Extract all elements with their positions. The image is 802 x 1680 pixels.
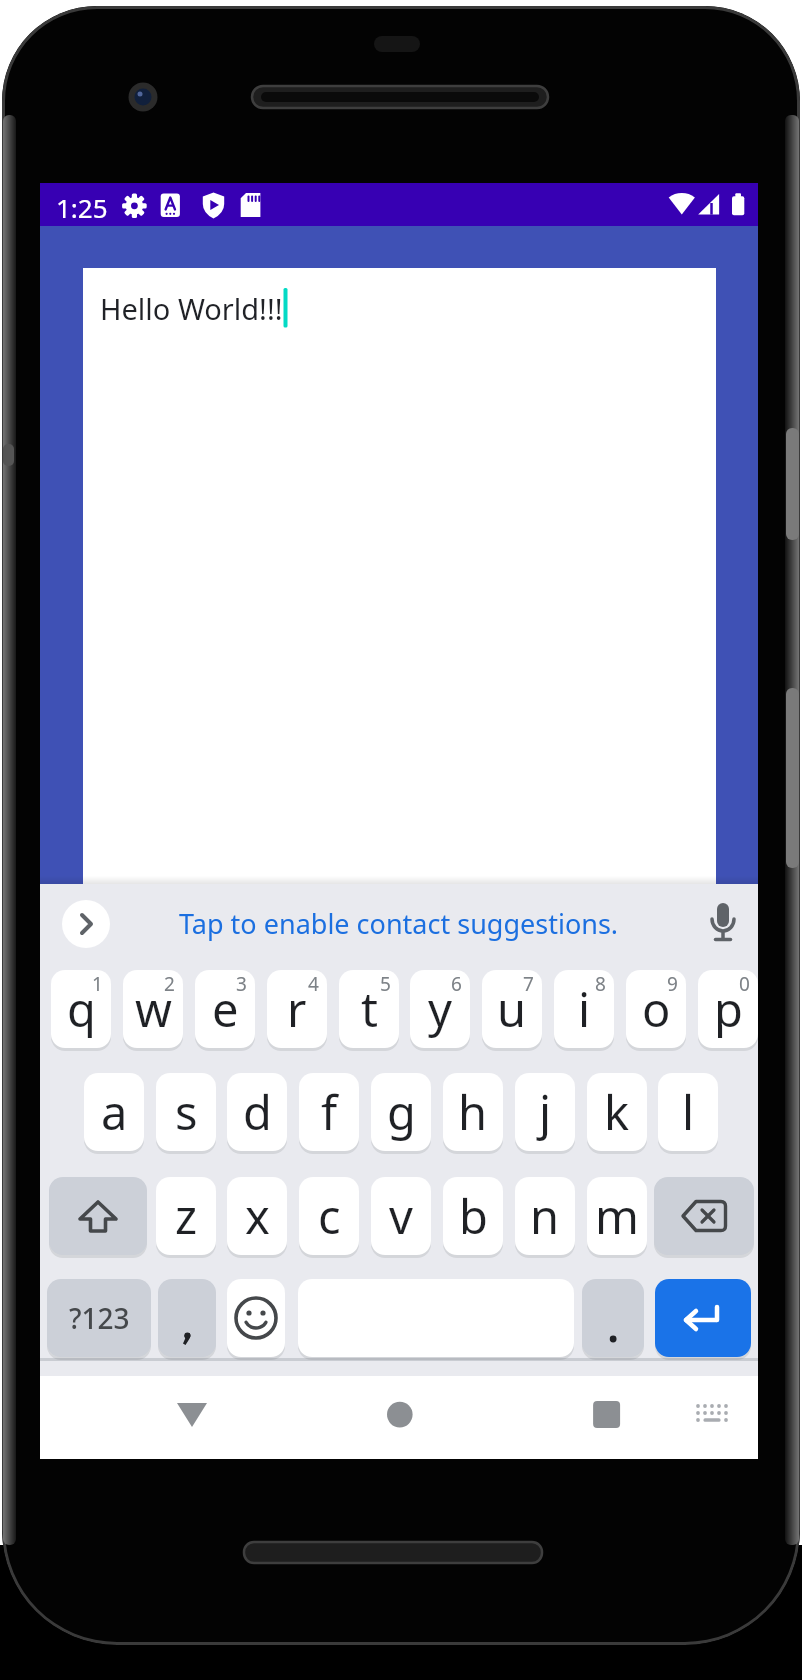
staticText: m <box>595 1184 639 1248</box>
button[interactable]: o <box>626 970 686 1048</box>
staticText: s <box>175 1080 198 1144</box>
staticText: h <box>458 1080 488 1144</box>
staticText: 6 <box>451 971 462 997</box>
staticText: b <box>459 1184 488 1248</box>
staticText: e <box>212 977 239 1041</box>
button[interactable]: p <box>698 970 758 1048</box>
button[interactable]: d <box>227 1073 287 1151</box>
button[interactable]: e <box>195 970 255 1048</box>
staticText: 3 <box>236 971 247 997</box>
button[interactable]: l <box>658 1073 718 1151</box>
button[interactable]: y <box>410 970 470 1048</box>
staticText: ?123 <box>69 1299 130 1337</box>
button[interactable] <box>370 1386 430 1446</box>
staticText: Hello World!!! <box>100 289 283 328</box>
staticText: c <box>318 1184 341 1248</box>
button[interactable] <box>576 1386 636 1446</box>
button[interactable]: q <box>51 970 111 1048</box>
staticText: l <box>682 1080 695 1144</box>
button[interactable]: s <box>156 1073 216 1151</box>
staticText: x <box>245 1184 270 1248</box>
button[interactable]: h <box>443 1073 503 1151</box>
staticText: 9 <box>667 971 678 997</box>
staticText: k <box>604 1080 630 1144</box>
button[interactable]: t <box>339 970 399 1048</box>
staticText: n <box>530 1184 560 1248</box>
button[interactable] <box>62 900 110 948</box>
button[interactable]: c <box>299 1177 359 1255</box>
button[interactable]: i <box>554 970 614 1048</box>
staticText: 1:25 <box>56 190 108 225</box>
button[interactable] <box>655 1279 751 1357</box>
staticText: g <box>387 1080 416 1144</box>
staticText: y <box>428 977 452 1041</box>
button[interactable] <box>685 1386 740 1446</box>
staticText: d <box>243 1080 272 1144</box>
button[interactable] <box>702 899 744 959</box>
button[interactable] <box>158 1279 216 1357</box>
button[interactable]: n <box>515 1177 575 1255</box>
staticText: f <box>321 1080 338 1144</box>
button[interactable] <box>582 1279 644 1357</box>
button[interactable]: f <box>299 1073 359 1151</box>
staticText: 0 <box>739 971 750 997</box>
staticText: 7 <box>523 971 534 997</box>
staticText: j <box>539 1080 552 1144</box>
button[interactable]: ?123 <box>47 1279 151 1357</box>
button[interactable]: a <box>84 1073 144 1151</box>
button[interactable] <box>654 1177 754 1255</box>
button[interactable]: u <box>482 970 542 1048</box>
staticText: r <box>287 977 307 1041</box>
staticText: Tap to enable contact suggestions. <box>179 905 619 942</box>
button[interactable] <box>227 1279 285 1357</box>
button[interactable]: g <box>371 1073 431 1151</box>
button[interactable]: b <box>443 1177 503 1255</box>
staticText: 1 <box>92 971 103 997</box>
button[interactable] <box>162 1386 222 1446</box>
button[interactable]: j <box>515 1073 575 1151</box>
button[interactable]: z <box>156 1177 216 1255</box>
button[interactable]: m <box>587 1177 647 1255</box>
staticText: w <box>135 977 172 1041</box>
staticText: i <box>578 977 591 1041</box>
staticText: 2 <box>164 971 175 997</box>
button[interactable]: w <box>123 970 183 1048</box>
button[interactable]: v <box>371 1177 431 1255</box>
staticText: q <box>67 977 96 1041</box>
button[interactable] <box>49 1177 147 1255</box>
staticText: 4 <box>308 971 319 997</box>
staticText: u <box>497 977 527 1041</box>
staticText: p <box>714 977 743 1041</box>
staticText: o <box>642 977 671 1041</box>
button[interactable]: r <box>267 970 327 1048</box>
staticText: 5 <box>380 971 391 997</box>
button[interactable]: k <box>587 1073 647 1151</box>
staticText: z <box>175 1184 198 1248</box>
staticText: a <box>101 1080 128 1144</box>
staticText: 8 <box>595 971 606 997</box>
button[interactable]: x <box>227 1177 287 1255</box>
staticText: t <box>361 977 378 1041</box>
staticText: v <box>389 1184 413 1248</box>
button[interactable] <box>83 268 716 884</box>
